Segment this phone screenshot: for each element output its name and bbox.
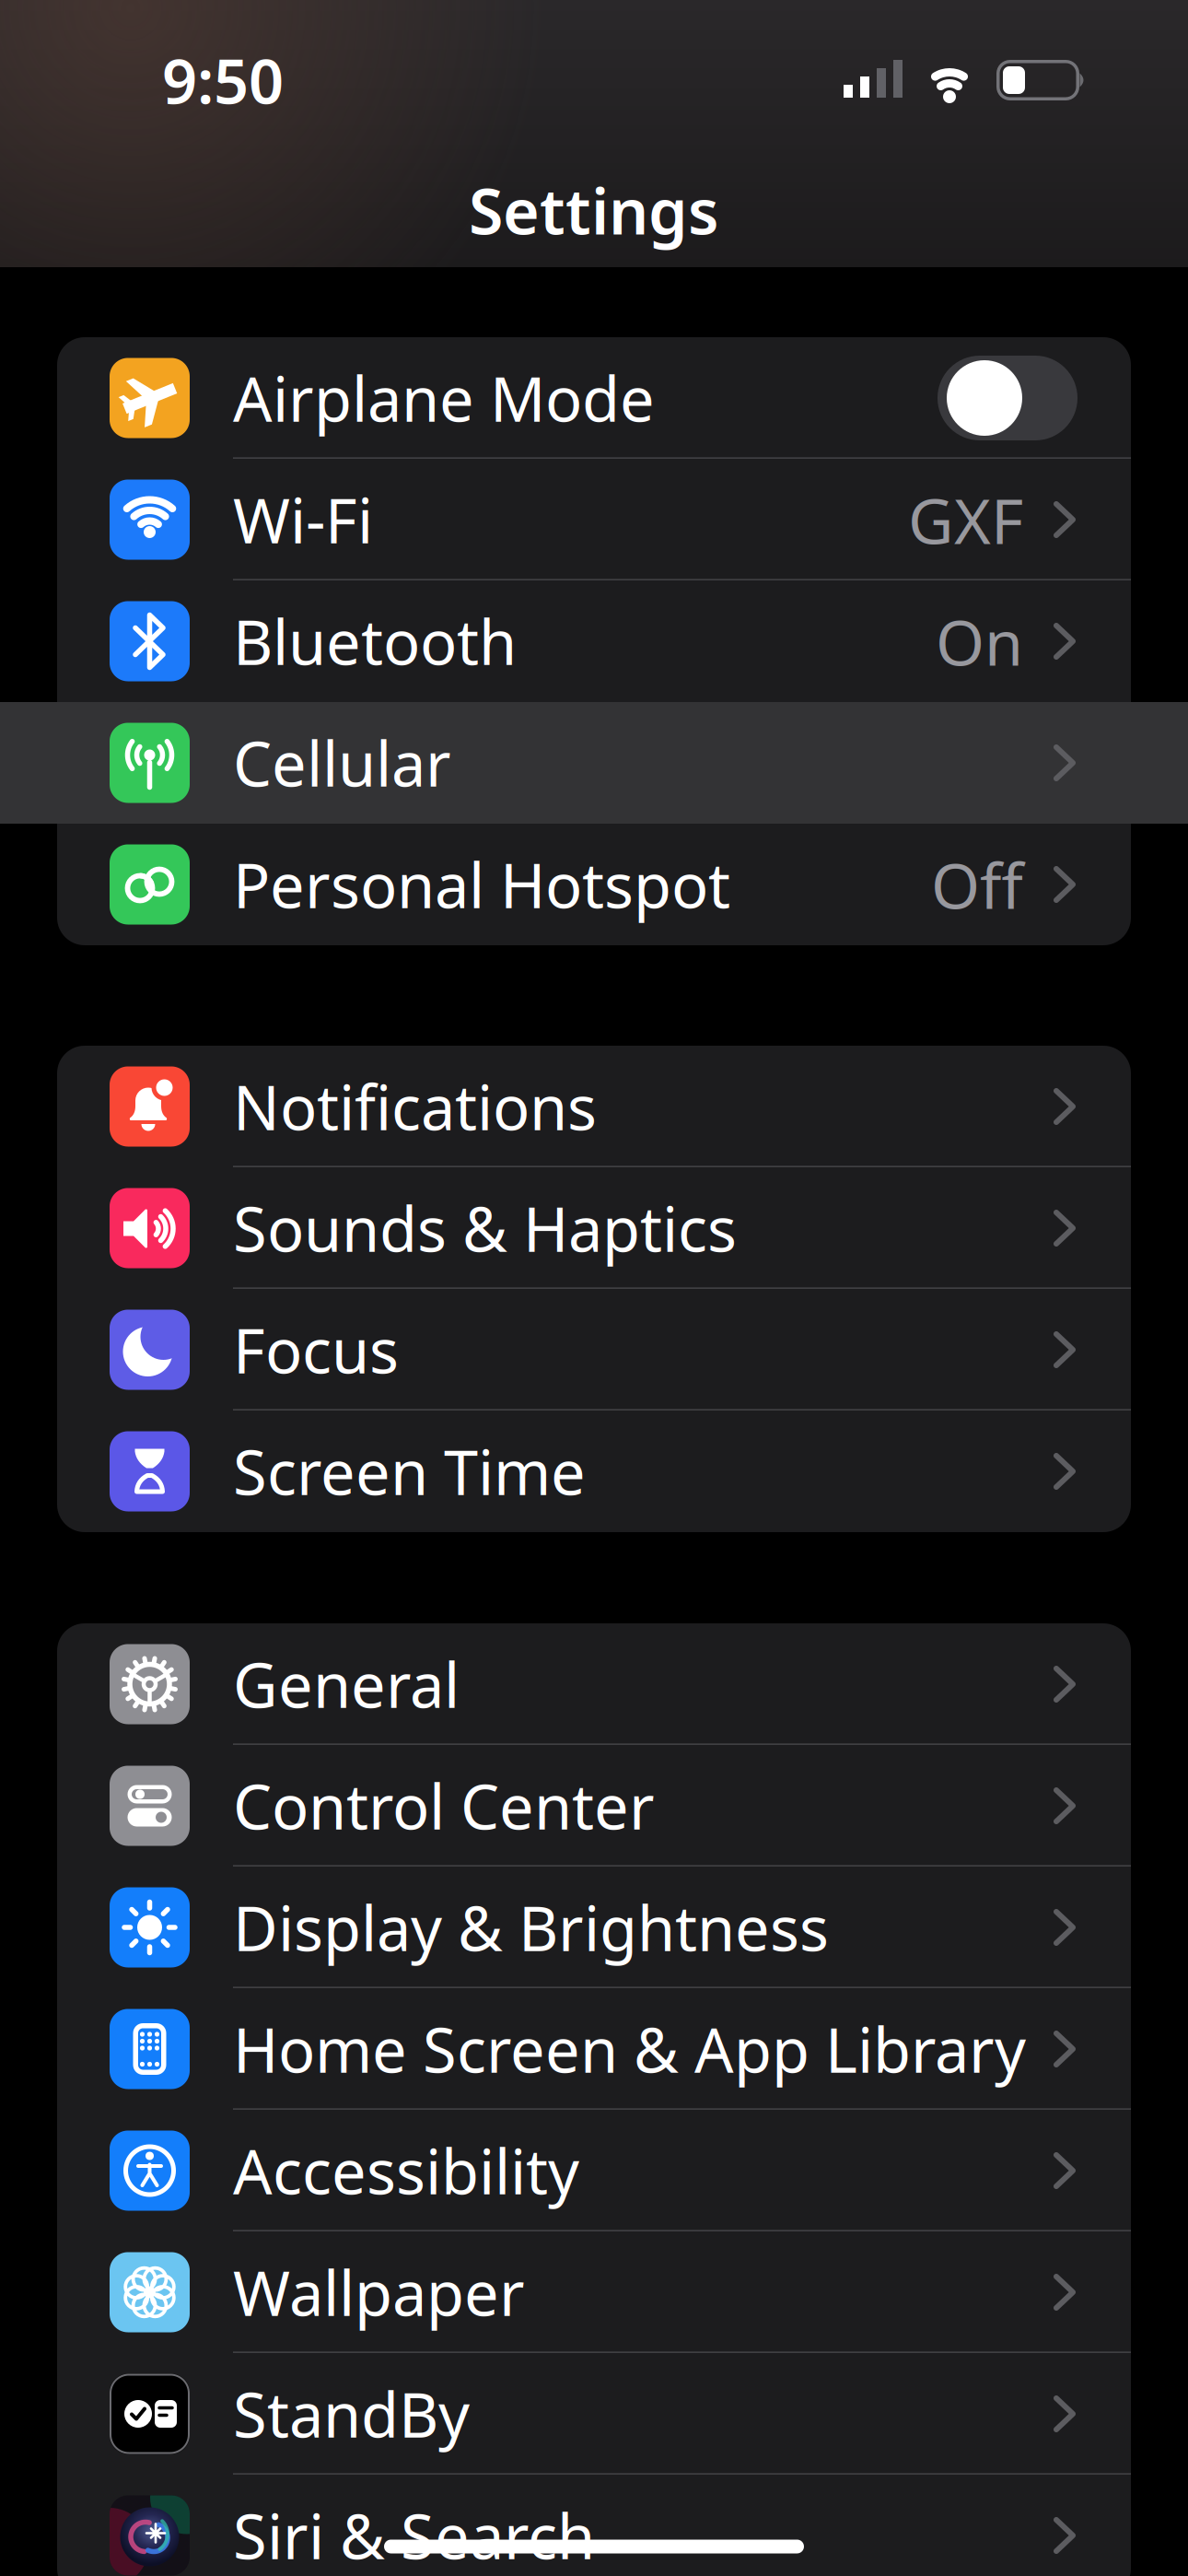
button[interactable]: Wallpaper [57,2231,1131,2353]
staticText: Control Center [233,1765,655,1847]
staticText: Focus [233,1309,399,1390]
staticText: Screen Time [233,1431,586,1512]
button[interactable]: Screen Time [57,1411,1131,1532]
button[interactable]: Personal Hotspot [57,824,1131,945]
button[interactable]: Cellular [57,702,1131,824]
staticText: General [233,1643,460,1725]
staticText: StandBy [233,2373,470,2455]
button[interactable]: Airplane Mode [938,356,1077,440]
staticText: Cellular [233,722,451,804]
staticText: Settings [469,168,719,252]
staticText: 9:50 [162,39,284,121]
staticText: Wallpaper [233,2251,525,2333]
button[interactable]: Control Center [57,1745,1131,1867]
staticText: On [936,600,1023,683]
button[interactable]: Display & Brightness [57,1867,1131,1988]
staticText: Accessibility [233,2130,579,2211]
button[interactable]: Focus [57,1289,1131,1411]
staticText: Siri & Search [233,2495,595,2576]
button[interactable]: Siri & Search [57,2475,1131,2576]
button[interactable]: General [57,1623,1131,1745]
staticText: GXF [908,478,1023,561]
staticText: Sounds & Haptics [233,1187,737,1269]
button[interactable]: Accessibility [57,2110,1131,2231]
staticText: Wi-Fi [233,479,373,560]
button[interactable]: Sounds & Haptics [57,1167,1131,1289]
staticText: Notifications [233,1066,597,1147]
button[interactable]: Home Screen & App Library [57,1988,1131,2110]
button[interactable]: Wi-Fi [57,459,1131,580]
button[interactable]: Bluetooth [57,580,1131,702]
staticText: Home Screen & App Library [233,2008,1026,2090]
staticText: Airplane Mode [233,357,655,439]
staticText: Off [931,843,1023,926]
staticText: Personal Hotspot [233,844,730,925]
button[interactable]: StandBy [57,2353,1131,2475]
staticText: Display & Brightness [233,1887,829,1968]
button[interactable]: Notifications [57,1046,1131,1167]
staticText: Bluetooth [233,600,517,682]
